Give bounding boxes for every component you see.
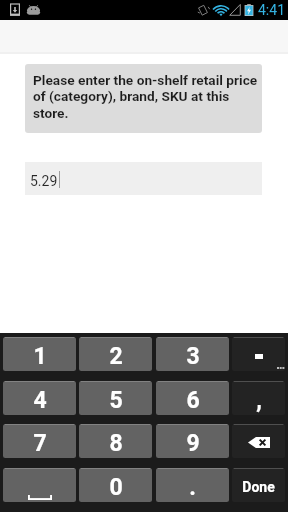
staticText: 6 — [186, 387, 200, 414]
button[interactable]: Minus — [232, 337, 285, 371]
button[interactable]: . — [156, 468, 229, 502]
staticText: 4 — [33, 387, 47, 414]
button[interactable]: 8 — [79, 424, 152, 458]
button[interactable]: Done — [232, 468, 285, 502]
staticText: . — [189, 474, 196, 501]
button[interactable]: 5.29 — [25, 162, 262, 195]
staticText: 4:41 — [258, 2, 285, 18]
button[interactable]: 9 — [156, 424, 229, 458]
button[interactable]: Backspace — [232, 424, 285, 458]
staticText: Please enter the on-shelf retail price o… — [33, 72, 262, 122]
button[interactable]: , — [232, 381, 285, 415]
staticText: 1 — [33, 343, 47, 370]
button[interactable]: 2 — [79, 337, 152, 371]
staticText: 7 — [33, 430, 47, 457]
staticText: 2 — [109, 343, 123, 370]
button[interactable]: 6 — [156, 381, 229, 415]
button[interactable]: 4 — [3, 381, 76, 415]
button[interactable]: 0 — [79, 468, 152, 502]
staticText: 3 — [186, 343, 200, 370]
staticText: 9 — [186, 430, 200, 457]
button[interactable]: Space — [3, 468, 76, 502]
staticText: 0 — [109, 474, 123, 501]
staticText: 5.29 — [30, 173, 58, 189]
staticText: 5 — [109, 387, 123, 414]
staticText: 8 — [109, 430, 123, 457]
staticText: Done — [242, 479, 275, 495]
button[interactable]: 5 — [79, 381, 152, 415]
button[interactable]: 7 — [3, 424, 76, 458]
button[interactable]: 3 — [156, 337, 229, 371]
staticText: , — [256, 387, 262, 414]
button[interactable]: 1 — [3, 337, 76, 371]
